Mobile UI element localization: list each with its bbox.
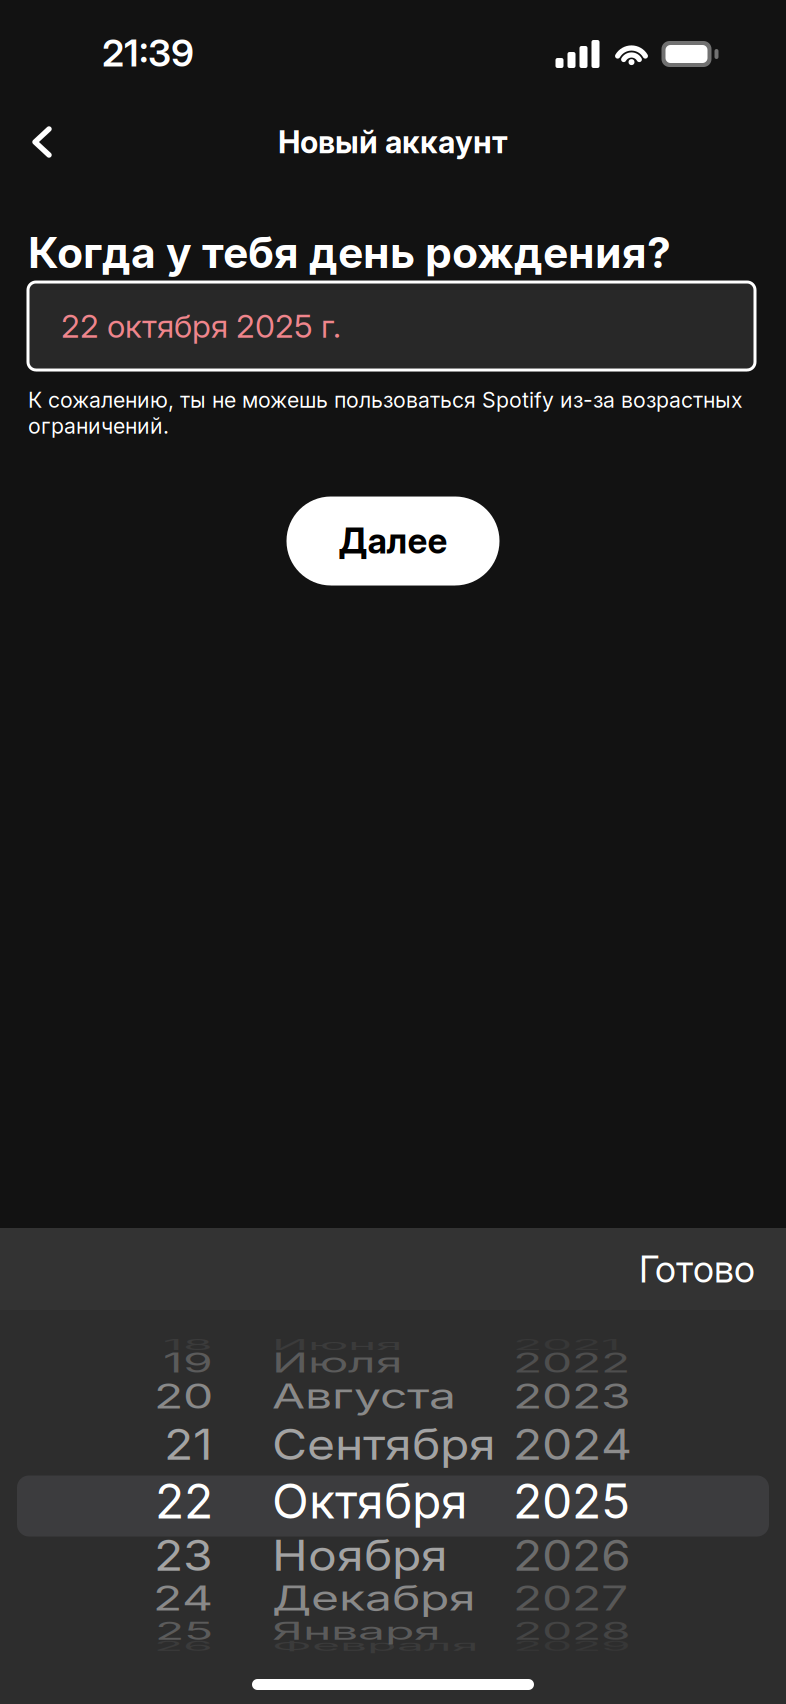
staticText: 2028 (513, 1602, 631, 1660)
staticText: 25 (155, 1602, 213, 1660)
staticText: 2024 (513, 1415, 632, 1473)
staticText: Января (272, 1602, 441, 1660)
staticText: 20 (154, 1367, 213, 1425)
staticText: Декабря (272, 1569, 476, 1627)
staticText: 21:39 (102, 30, 194, 76)
staticText: Готово (639, 1246, 755, 1292)
staticText: 2025 (513, 1472, 630, 1530)
staticText: 2027 (513, 1569, 628, 1627)
staticText: Когда у тебя день рождения? (28, 227, 671, 278)
staticText: Новый аккаунт (278, 123, 508, 160)
staticText: Сентября (272, 1415, 496, 1473)
staticText: Августа (272, 1367, 456, 1425)
staticText: Июня (272, 1316, 403, 1374)
staticText: 2021 (513, 1316, 621, 1374)
staticText: 2022 (513, 1334, 630, 1392)
button[interactable]: 22 октября 2025 г. (28, 282, 755, 370)
staticText: 22 октября 2025 г. (61, 307, 341, 345)
staticText: Июля (272, 1334, 403, 1392)
staticText: Февраля (272, 1617, 479, 1675)
staticText: 18 (163, 1316, 213, 1374)
staticText: 2023 (513, 1367, 631, 1425)
staticText: 19 (163, 1334, 213, 1392)
staticText: 23 (154, 1526, 213, 1584)
staticText: 21 (164, 1415, 213, 1473)
staticText: Далее (338, 520, 447, 562)
staticText: 2029 (513, 1617, 631, 1675)
staticText: К сожалению, ты не можешь пользоваться S… (28, 387, 743, 439)
staticText: 2026 (513, 1526, 631, 1584)
staticText: 22 (155, 1472, 213, 1530)
button[interactable]: Назад (3, 108, 81, 176)
button[interactable]: Далее (286, 496, 499, 585)
staticText: 26 (154, 1617, 213, 1675)
button[interactable]: Готово (608, 1227, 786, 1311)
staticText: 24 (153, 1569, 213, 1627)
staticText: Октября (272, 1472, 468, 1530)
staticText: Ноября (272, 1526, 448, 1584)
